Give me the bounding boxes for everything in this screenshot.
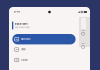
staticText: Unified inbox [21,38,31,40]
button[interactable]: Outbox [9,55,79,65]
staticText: Display name [14,23,27,25]
staticText: me@domain.example [14,26,29,28]
button[interactable]: Display name [9,17,79,34]
staticText: Outbox [21,59,28,61]
staticText: Inbox [21,48,26,51]
button[interactable]: Inbox [9,44,79,55]
staticText: 9:41 [14,10,20,13]
button[interactable]: Unified inbox [9,34,79,44]
